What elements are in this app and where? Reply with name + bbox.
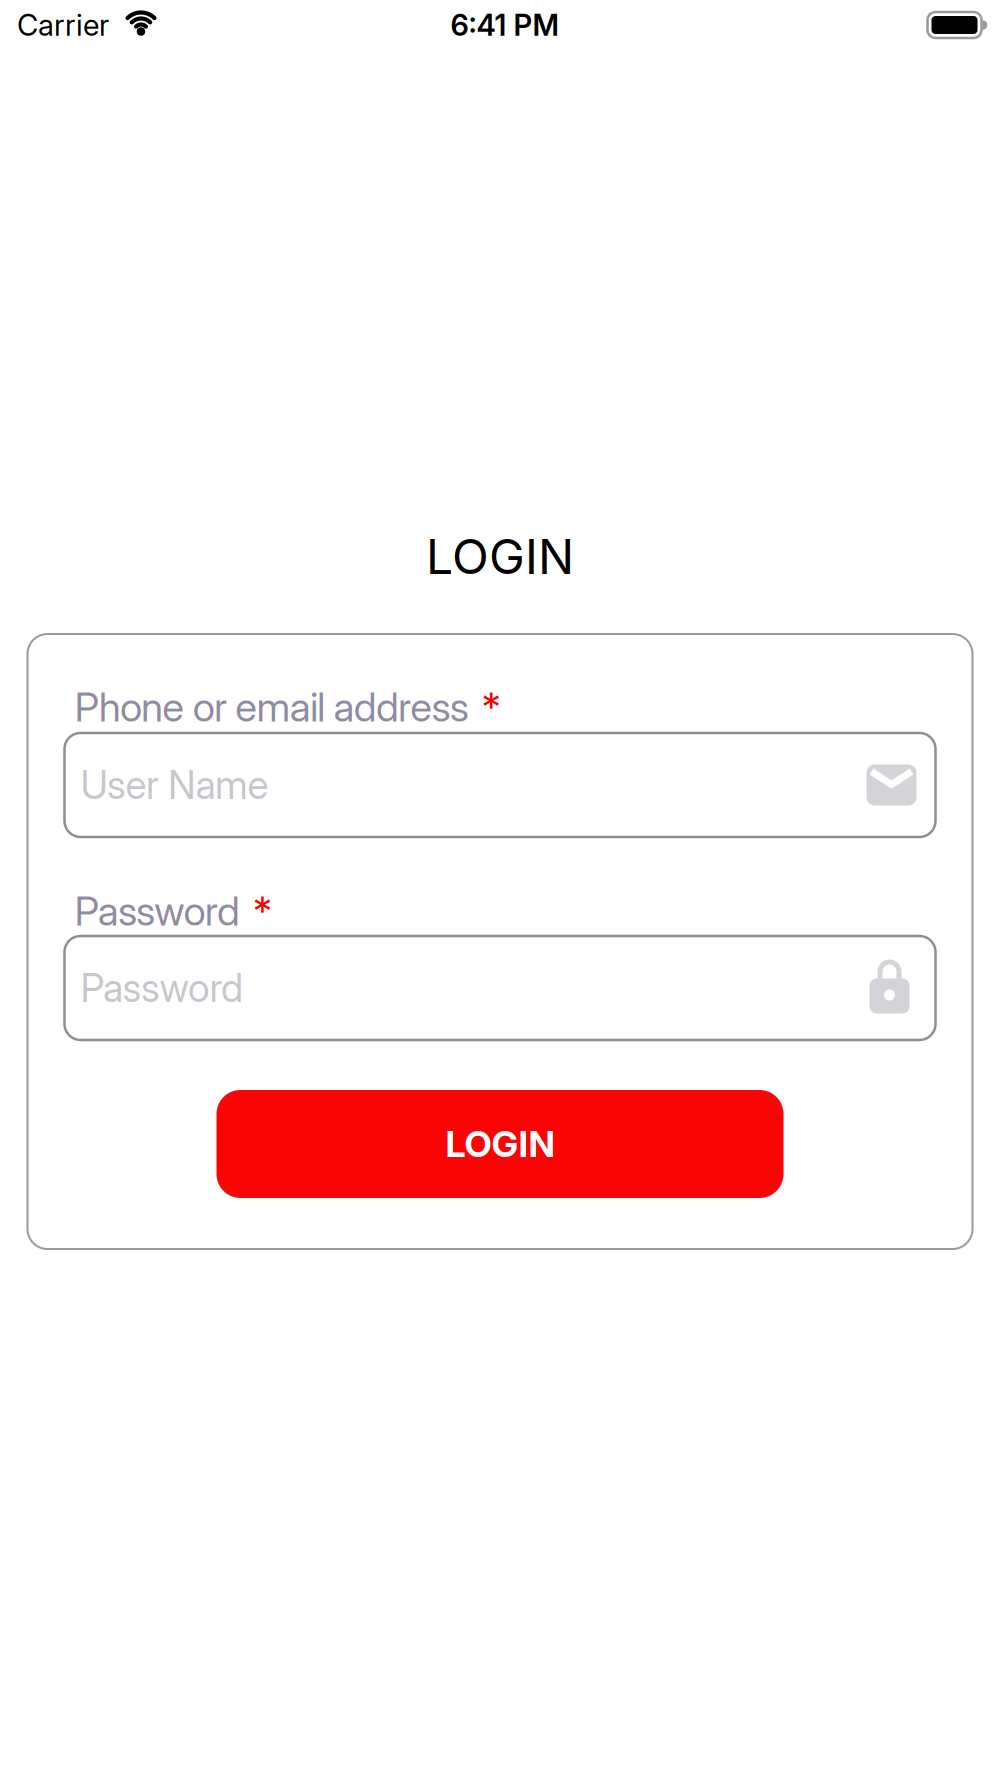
staticText: User Name — [80, 762, 268, 808]
button[interactable]: Password — [64, 936, 935, 1040]
staticText: Password — [80, 965, 243, 1011]
button[interactable]: LOGIN — [216, 1090, 783, 1198]
staticText: * — [253, 887, 272, 935]
button[interactable]: User Name — [64, 733, 935, 837]
staticText: LOGIN — [426, 528, 574, 585]
staticText: LOGIN — [445, 1123, 554, 1165]
staticText: Phone or email address — [74, 683, 469, 731]
staticText: 6:41 PM — [450, 8, 559, 42]
staticText: Password — [74, 887, 240, 935]
staticText: * — [482, 683, 501, 731]
staticText: Carrier — [17, 8, 109, 42]
